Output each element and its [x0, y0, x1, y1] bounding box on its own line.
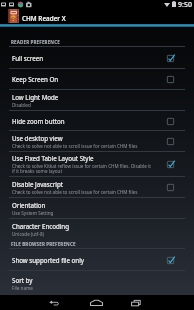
button[interactable]: Home [82, 295, 111, 310]
button[interactable]: Hide zoom button [0, 111, 194, 130]
button[interactable]: Recent apps [122, 295, 151, 310]
staticText: Disabled [12, 102, 31, 108]
button[interactable]: Show supported file only [0, 249, 194, 270]
staticText: FILE BROWSER PREFERENCE [11, 241, 76, 247]
button[interactable]: Checked [163, 253, 177, 267]
button[interactable]: Unchecked [163, 114, 177, 128]
staticText: 9:50 [178, 0, 192, 8]
staticText: Keep Screen On [12, 75, 59, 83]
staticText: Check to solve not able to scroll issue … [12, 143, 138, 149]
button[interactable]: Character Encoding [0, 219, 194, 239]
staticText: Use desktop view [12, 134, 63, 142]
button[interactable]: Checked [163, 157, 177, 171]
button[interactable]: Unchecked [163, 180, 177, 194]
button[interactable]: Unchecked [163, 134, 177, 148]
staticText: Unicode (utf-8) [12, 231, 44, 237]
staticText: Check to solve not able to scroll issue … [12, 189, 138, 195]
staticText: Show supported file only [12, 256, 84, 264]
staticText: CHM Reader X [22, 14, 66, 23]
staticText: File name [12, 285, 33, 291]
staticText: Hide zoom button [12, 117, 65, 125]
staticText: Full screen [12, 54, 44, 62]
button[interactable]: Low Light Mode [0, 90, 194, 110]
staticText: Orientation [12, 201, 46, 209]
button[interactable]: Use Fixed Table Layout Style [0, 152, 194, 176]
button[interactable]: Disable Javascript [0, 177, 194, 197]
button[interactable]: Use desktop view [0, 131, 194, 151]
button[interactable]: Unchecked [163, 72, 177, 86]
staticText: Character Encoding [12, 222, 69, 230]
staticText: Check to solve Kitkat reflow issue for c… [12, 163, 152, 174]
button[interactable]: CHM Reader X [0, 8, 194, 24]
staticText: Disable Javascript [12, 180, 63, 188]
button[interactable]: Orientation [0, 198, 194, 218]
button[interactable]: Full screen [0, 47, 194, 68]
staticText: READER PREFERENCE [11, 39, 60, 45]
button[interactable]: Sort by [0, 271, 194, 295]
staticText: Use System Setting [12, 210, 54, 216]
button[interactable]: Checked [163, 51, 177, 65]
staticText: Sort by [12, 276, 33, 284]
button[interactable]: Keep Screen On [0, 69, 194, 89]
staticText: Use Fixed Table Layout Style [12, 154, 94, 162]
button[interactable]: Back [41, 295, 70, 310]
staticText: Low Light Mode [12, 93, 59, 101]
